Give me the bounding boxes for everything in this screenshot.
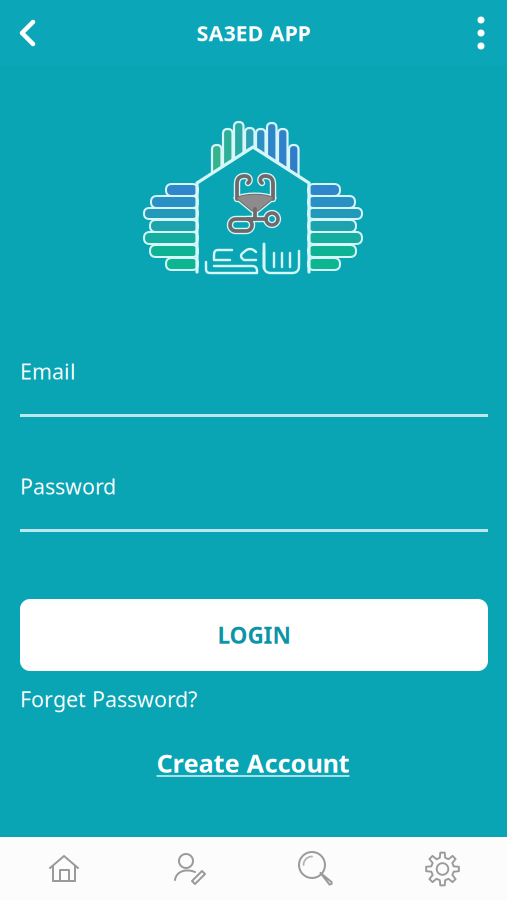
button[interactable]: Back [0,0,56,66]
staticText: Email [20,357,76,385]
staticText: Create Account [156,746,349,780]
button[interactable]: Profile [127,837,253,900]
button[interactable]: Search [253,837,379,900]
staticText: SA3ED APP [196,19,310,47]
button[interactable]: Forget Password? [20,682,488,716]
button[interactable]: LOGIN [20,599,488,671]
button[interactable]: Settings [379,837,506,900]
button[interactable]: Home [1,837,127,900]
staticText: LOGIN [217,620,290,650]
staticText: Password [20,472,116,500]
button[interactable]: Create Account [103,742,403,784]
staticText: Forget Password? [20,685,197,713]
button[interactable]: More options [455,0,507,66]
